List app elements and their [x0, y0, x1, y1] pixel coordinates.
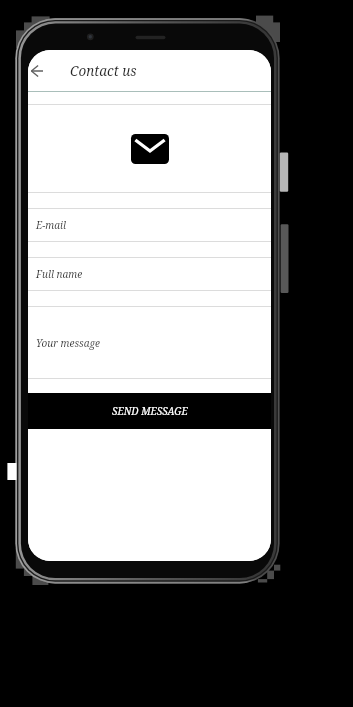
button[interactable]: Back	[28, 62, 48, 80]
button[interactable]: E-mail	[28, 209, 271, 241]
staticText: Contact us	[70, 62, 137, 80]
button[interactable]: Your message	[28, 307, 271, 378]
staticText: Your message	[36, 336, 101, 350]
staticText: E-mail	[36, 218, 67, 232]
staticText: Full name	[36, 267, 83, 281]
button[interactable]: Full name	[28, 258, 271, 290]
staticText: SEND MESSAGE	[112, 404, 188, 418]
button[interactable]: SEND MESSAGE	[28, 393, 271, 429]
